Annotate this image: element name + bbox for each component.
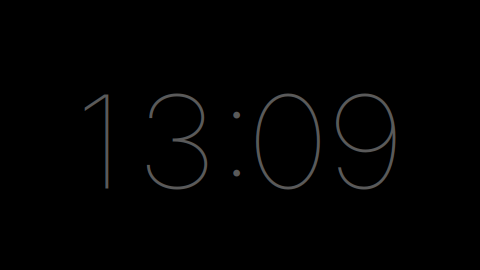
staticText: 3	[142, 63, 211, 220]
staticText: :	[224, 50, 249, 207]
staticText: 9	[332, 63, 399, 220]
staticText: 0	[252, 63, 324, 220]
button[interactable]: 13:09	[0, 0, 480, 270]
staticText: 1	[79, 63, 118, 220]
